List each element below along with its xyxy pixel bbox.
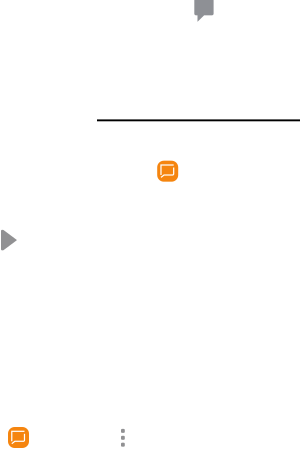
button[interactable]: New message	[157, 161, 178, 182]
button[interactable]: Play	[1, 229, 17, 251]
button[interactable]: Messages	[8, 427, 29, 448]
button[interactable]: Messages	[194, 0, 214, 22]
button[interactable]: More	[121, 429, 125, 447]
